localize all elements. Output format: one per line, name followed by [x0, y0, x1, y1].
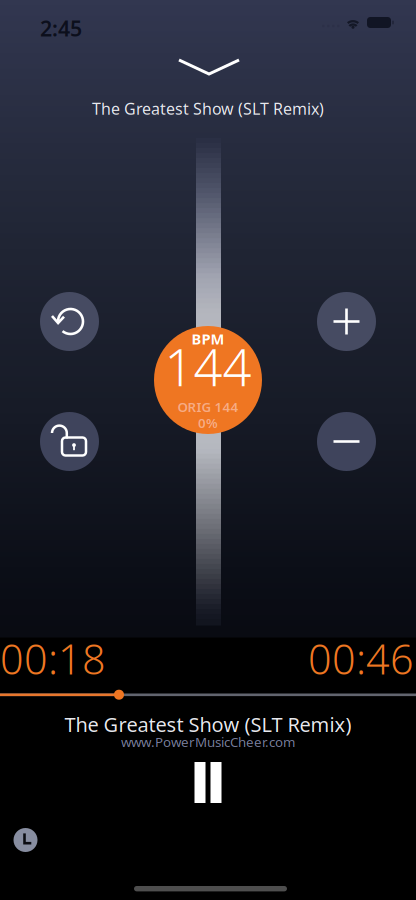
staticText: 00:18: [0, 631, 106, 686]
staticText: 144: [164, 333, 251, 400]
button[interactable]: Pause: [194, 762, 221, 803]
staticText: 2:45: [40, 14, 82, 42]
staticText: BPM: [191, 329, 224, 348]
staticText: 0%: [198, 414, 218, 432]
button[interactable]: Timer: [13, 828, 37, 852]
staticText: www.PowerMusicCheer.com: [121, 733, 295, 751]
staticText: 00:46: [308, 631, 414, 686]
button[interactable]: Decrease tempo: [317, 412, 376, 471]
staticText: The Greatest Show (SLT Remix): [92, 98, 324, 119]
button[interactable]: Lock tempo: [40, 412, 99, 471]
staticText: The Greatest Show (SLT Remix): [64, 711, 351, 738]
button[interactable]: Reset tempo: [40, 292, 99, 351]
staticText: ORIG 144: [177, 398, 238, 416]
button[interactable]: Increase tempo: [317, 292, 376, 351]
